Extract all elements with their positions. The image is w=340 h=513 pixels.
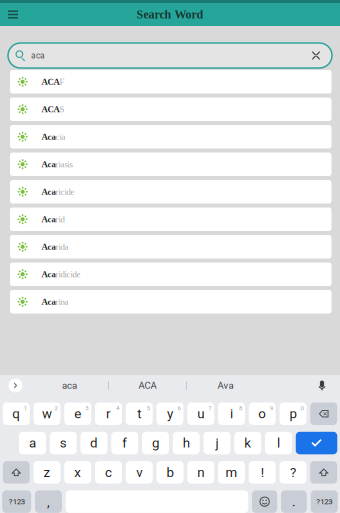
button[interactable]: Aca (10, 180, 331, 203)
button[interactable]: Aca (10, 152, 331, 176)
button[interactable]: ! (249, 461, 276, 484)
staticText: 1 (24, 404, 27, 412)
button[interactable]: e (64, 402, 91, 425)
staticText: m (225, 464, 237, 480)
button[interactable]: Aca (10, 125, 331, 148)
staticText: ? (290, 464, 296, 480)
button[interactable]: ? (279, 461, 306, 484)
staticText: o (258, 406, 266, 421)
button[interactable]: Ava (187, 375, 264, 396)
button[interactable]: ACA (109, 375, 186, 396)
staticText: rid (55, 214, 64, 224)
button[interactable]: Aca (10, 290, 331, 313)
staticText: cia (55, 132, 65, 142)
button[interactable]: Clear search (301, 50, 332, 60)
button[interactable]: k (234, 432, 261, 454)
staticText: 9 (270, 404, 273, 412)
button[interactable]: g (142, 432, 169, 454)
staticText: 0 (300, 404, 303, 412)
button[interactable]: w (33, 402, 60, 425)
button[interactable]: y (156, 402, 183, 425)
button[interactable]: ACA (10, 70, 331, 93)
button[interactable]: ACA (10, 97, 331, 121)
button[interactable]: d (80, 432, 107, 454)
button[interactable]: Search (296, 432, 337, 454)
button[interactable]: t (126, 402, 153, 425)
staticText: ACA (138, 380, 156, 391)
staticText: c (105, 464, 112, 480)
staticText: . (292, 494, 296, 509)
staticText: , (47, 494, 50, 509)
button[interactable]: r (95, 402, 122, 425)
button[interactable]: o (249, 402, 276, 425)
button[interactable]: z (33, 461, 60, 484)
button[interactable]: q (3, 402, 30, 425)
button[interactable]: m (218, 461, 245, 484)
staticText: aca (62, 380, 77, 391)
staticText: a (29, 435, 36, 451)
button[interactable]: s (50, 432, 77, 454)
button[interactable]: i (218, 402, 245, 425)
staticText: 5 (147, 404, 150, 412)
button[interactable]: n (187, 461, 214, 484)
staticText: Aca (41, 269, 55, 279)
button[interactable]: , (35, 490, 62, 513)
staticText: 2 (54, 404, 57, 412)
button[interactable]: l (265, 432, 292, 454)
button[interactable]: Aca (10, 262, 331, 286)
button[interactable]: Aca (10, 235, 331, 258)
staticText: Aca (41, 242, 55, 252)
staticText: 4 (116, 404, 119, 412)
button[interactable]: b (156, 461, 183, 484)
button[interactable]: Voice input (304, 375, 340, 396)
button[interactable]: aca (31, 375, 108, 396)
staticText: Aca (41, 132, 55, 142)
button[interactable]: c (95, 461, 122, 484)
staticText: Search Word (136, 8, 203, 21)
button[interactable]: Shift (3, 461, 30, 484)
button[interactable]: p (279, 402, 306, 425)
staticText: 8 (239, 404, 242, 412)
button[interactable]: ?123 (311, 490, 338, 513)
staticText: e (74, 406, 81, 421)
staticText: ! (261, 464, 264, 480)
staticText: Aca (41, 214, 55, 224)
button[interactable]: Show more suggestions (0, 375, 31, 396)
staticText: aca (31, 50, 45, 60)
button[interactable]: Aca (10, 207, 331, 231)
button[interactable]: v (126, 461, 153, 484)
staticText: s (60, 435, 67, 451)
staticText: ACA (41, 104, 59, 114)
staticText: rina (55, 297, 68, 307)
button[interactable]: h (173, 432, 200, 454)
button[interactable]: j (203, 432, 230, 454)
button[interactable]: x (64, 461, 91, 484)
button[interactable]: Backspace (310, 402, 337, 425)
button[interactable]: ?123 (2, 490, 31, 513)
button[interactable]: a (19, 432, 46, 454)
staticText: x (74, 464, 81, 480)
staticText: ridicide (55, 269, 80, 279)
staticText: ?123 (316, 497, 332, 506)
staticText: Aca (41, 297, 55, 307)
button[interactable]: . (281, 490, 307, 513)
button[interactable]: Emoji (252, 490, 277, 513)
staticText: r (106, 406, 111, 421)
staticText: q (12, 406, 20, 421)
button[interactable]: u (187, 402, 214, 425)
staticText: v (136, 464, 142, 480)
button[interactable]: Shift (310, 461, 337, 484)
staticText: ACA (41, 77, 59, 87)
staticText: Ava (217, 380, 233, 391)
button[interactable]: f (111, 432, 138, 454)
staticText: y (167, 406, 173, 421)
button[interactable]: Menu (0, 3, 30, 26)
staticText: w (42, 406, 52, 421)
staticText: F (59, 77, 64, 87)
staticText: k (244, 435, 251, 451)
staticText: i (230, 406, 233, 421)
staticText: 6 (177, 404, 180, 412)
staticText: 7 (208, 404, 211, 412)
